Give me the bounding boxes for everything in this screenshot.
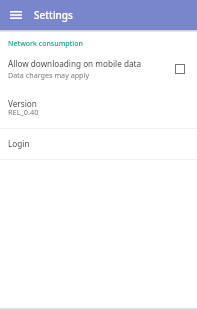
staticText: Login [8,138,30,149]
staticText: Data charges may apply [8,70,90,80]
staticText: REL_0.40 [8,107,39,117]
button[interactable]: Open navigation drawer [0,0,30,30]
button[interactable]: Allow downloading on mobile data checkbo… [175,64,185,74]
staticText: Version [8,98,37,109]
staticText: Settings [34,8,73,22]
button[interactable]: Allow downloading on mobile data [0,58,197,80]
button[interactable]: Login [0,129,197,159]
button[interactable]: Version [0,98,197,119]
staticText: Network consumption [8,39,83,49]
staticText: Allow downloading on mobile data [8,58,142,69]
